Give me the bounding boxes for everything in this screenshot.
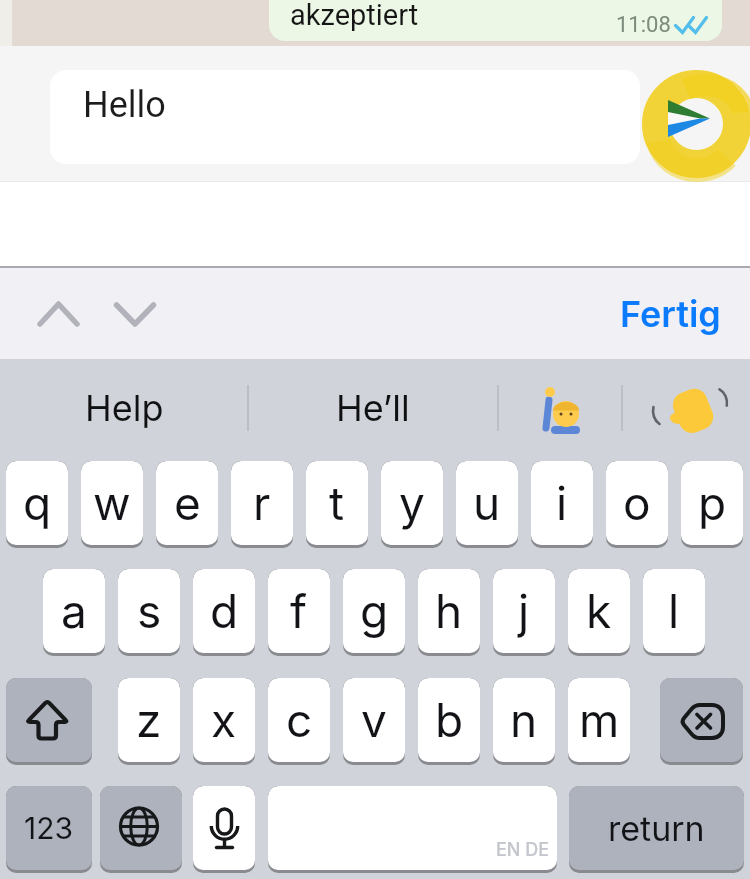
staticText: Hello	[83, 84, 166, 126]
staticText: m	[579, 692, 620, 748]
staticText: r	[253, 475, 271, 531]
button[interactable]: m	[568, 678, 630, 765]
staticText: b	[435, 692, 464, 748]
button[interactable]: z	[118, 678, 180, 765]
button[interactable]: Help	[8, 368, 240, 448]
staticText: g	[360, 583, 389, 639]
button[interactable]: r	[231, 461, 293, 548]
staticText: h	[435, 583, 463, 639]
button[interactable]	[100, 786, 182, 873]
staticText: s	[137, 583, 162, 639]
staticText: v	[361, 692, 387, 748]
staticText: d	[210, 583, 239, 639]
staticText: return	[608, 808, 705, 849]
button[interactable]	[506, 368, 616, 448]
staticText: e	[174, 475, 201, 531]
button[interactable]: x	[193, 678, 255, 765]
button[interactable]	[628, 368, 744, 448]
button[interactable]: d	[193, 569, 255, 656]
button[interactable]: s	[118, 569, 180, 656]
staticText: l	[668, 583, 680, 639]
staticText: q	[23, 475, 52, 531]
staticText: EN DE	[496, 839, 550, 861]
button[interactable]: Fertig	[600, 283, 740, 345]
staticText: y	[399, 475, 425, 531]
button[interactable]: k	[568, 569, 630, 656]
button[interactable]: return	[569, 786, 744, 873]
staticText: i	[556, 475, 568, 531]
button[interactable]: l	[643, 569, 705, 656]
staticText: w	[93, 475, 131, 531]
staticText: a	[61, 583, 87, 639]
staticText: akzeptiert	[290, 0, 419, 32]
button[interactable]: n	[493, 678, 555, 765]
button[interactable]: 123	[6, 786, 92, 873]
staticText: c	[286, 692, 313, 748]
button[interactable]: o	[606, 461, 668, 548]
staticText: o	[623, 475, 651, 531]
staticText: He’ll	[336, 386, 410, 430]
button[interactable]: q	[6, 461, 68, 548]
button[interactable]: u	[456, 461, 518, 548]
button[interactable]	[6, 678, 92, 765]
button[interactable]: p	[681, 461, 743, 548]
button[interactable]: g	[343, 569, 405, 656]
staticText: t	[329, 475, 345, 531]
button[interactable]: i	[531, 461, 593, 548]
button[interactable]: akzeptiert	[269, 0, 722, 41]
staticText: n	[510, 692, 538, 748]
button[interactable]: a	[43, 569, 105, 656]
button[interactable]: b	[418, 678, 480, 765]
staticText: p	[698, 475, 727, 531]
button[interactable]	[108, 294, 160, 336]
button[interactable]	[32, 294, 84, 336]
button[interactable]: h	[418, 569, 480, 656]
staticText: k	[586, 583, 612, 639]
staticText: 123	[24, 810, 74, 846]
staticText: z	[136, 692, 162, 748]
staticText: x	[211, 692, 237, 748]
button[interactable]: e	[156, 461, 218, 548]
staticText: 11:08	[616, 12, 671, 38]
staticText: Help	[85, 386, 164, 430]
button[interactable]	[268, 786, 557, 873]
button[interactable]	[193, 786, 255, 873]
button[interactable]	[650, 80, 745, 175]
button[interactable]: t	[306, 461, 368, 548]
staticText: u	[473, 475, 501, 531]
button[interactable]: w	[81, 461, 143, 548]
button[interactable]: Hello	[50, 70, 640, 164]
button[interactable]: y	[381, 461, 443, 548]
staticText: f	[290, 583, 308, 639]
staticText: Fertig	[620, 292, 721, 336]
staticText: j	[518, 583, 530, 639]
button[interactable]	[660, 678, 743, 765]
button[interactable]: j	[493, 569, 555, 656]
button[interactable]: f	[268, 569, 330, 656]
button[interactable]: v	[343, 678, 405, 765]
button[interactable]: He’ll	[256, 368, 490, 448]
button[interactable]: c	[268, 678, 330, 765]
